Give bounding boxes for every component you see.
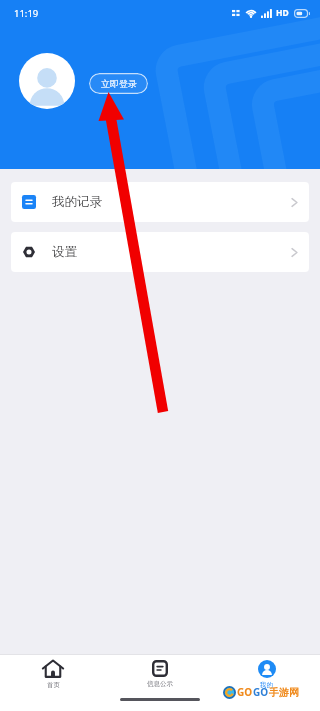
staticText: 信息公示	[147, 680, 173, 688]
staticText: 手游网	[269, 686, 299, 699]
button[interactable]: 设置	[11, 232, 309, 272]
staticText: GO	[237, 685, 253, 699]
staticText: HD	[276, 7, 289, 19]
staticText: 设置	[52, 244, 77, 260]
button[interactable]: 首页	[0, 655, 106, 693]
button[interactable]: 我的记录	[11, 182, 309, 222]
staticText: 立即登录	[101, 78, 137, 89]
button[interactable]: 我的	[213, 655, 320, 693]
button[interactable]: 立即登录	[89, 73, 148, 94]
staticText: 11:19	[14, 7, 39, 20]
staticText: 我的记录	[52, 194, 102, 210]
staticText: 首页	[47, 681, 60, 689]
staticText: GO	[253, 685, 269, 699]
staticText: 我的	[260, 681, 273, 689]
button[interactable]: 信息公示	[106, 655, 213, 693]
button[interactable]: Profile avatar	[19, 53, 75, 109]
